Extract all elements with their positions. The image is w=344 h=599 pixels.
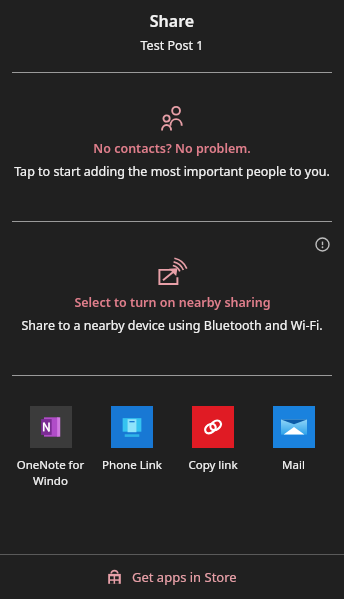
staticText: Share to a nearby device using Bluetooth…	[21, 317, 323, 334]
button[interactable]: Select to turn on nearby sharing	[0, 222, 344, 356]
button[interactable]: No contacts? No problem.	[0, 73, 344, 200]
staticText: OneNote for Windo	[10, 457, 91, 488]
staticText: Mail	[282, 457, 305, 473]
staticText: Copy link	[188, 457, 238, 473]
staticText: Share	[0, 10, 344, 32]
button[interactable]: Get apps in Store	[0, 555, 344, 599]
button[interactable]: OneNote for Windo	[10, 402, 91, 492]
button[interactable]: Mail	[253, 402, 334, 477]
staticText: No contacts? No problem.	[93, 140, 251, 157]
staticText: Tap to start adding the most important p…	[14, 163, 330, 180]
staticText: Select to turn on nearby sharing	[74, 294, 271, 311]
staticText: Phone Link	[102, 457, 162, 473]
staticText: Test Post 1	[0, 37, 344, 54]
button[interactable]: Copy link	[172, 402, 253, 477]
button[interactable]: Phone Link	[91, 402, 172, 477]
staticText: Get apps in Store	[132, 568, 237, 586]
button[interactable]: More information	[310, 232, 334, 256]
